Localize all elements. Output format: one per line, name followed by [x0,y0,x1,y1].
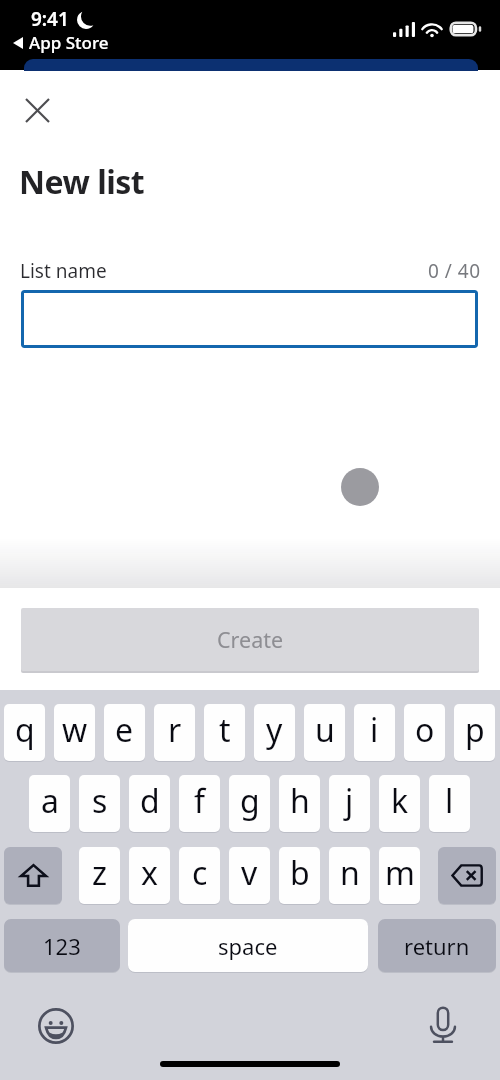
button[interactable]: k [379,775,420,832]
button[interactable]: d [129,775,170,832]
staticText: a [41,779,59,823]
button[interactable]: r [154,704,195,761]
staticText: z [92,851,108,895]
staticText: c [192,851,208,895]
staticText: New list [19,160,145,204]
button[interactable]: List name field [21,290,478,348]
staticText: j [345,779,354,823]
button[interactable]: u [304,704,345,761]
button[interactable]: n [329,847,370,904]
button[interactable]: v [229,847,270,904]
staticText: 0 / 40 [428,258,481,284]
button[interactable]: w [54,704,95,761]
button[interactable]: i [354,704,395,761]
staticText: space [218,931,278,961]
staticText: o [415,708,435,752]
staticText: Create [217,625,284,654]
button[interactable]: y [254,704,295,761]
button[interactable]: q [4,704,45,761]
staticText: g [240,779,260,823]
button[interactable]: c [179,847,220,904]
staticText: List name [20,258,107,284]
staticText: App Store [29,31,109,54]
staticText: m [385,851,415,895]
staticText: f [194,779,206,823]
staticText: q [15,708,35,752]
button[interactable]: return [378,919,496,972]
staticText: l [445,779,454,823]
button[interactable]: Shift [4,847,62,904]
button[interactable]: h [279,775,320,832]
staticText: p [465,708,485,752]
staticText: h [290,779,310,823]
staticText: i [370,708,379,752]
staticText: return [404,931,470,961]
staticText: e [115,708,134,752]
staticText: b [290,851,310,895]
staticText: r [168,708,182,752]
button[interactable]: z [79,847,120,904]
staticText: t [219,708,231,752]
button[interactable]: space [128,919,368,972]
staticText: 123 [43,931,81,961]
button[interactable]: e [104,704,145,761]
staticText: x [141,851,158,895]
button[interactable]: m [379,847,420,904]
button[interactable]: g [229,775,270,832]
button[interactable]: p [454,704,495,761]
button[interactable]: Dictation [421,1003,465,1047]
staticText: y [266,708,283,752]
button[interactable]: j [329,775,370,832]
button[interactable]: Create [21,608,479,671]
button[interactable]: Emoji [34,1004,78,1048]
button[interactable]: o [404,704,445,761]
staticText: d [140,779,160,823]
button[interactable]: b [279,847,320,904]
staticText: w [62,708,88,752]
staticText: v [241,851,258,895]
staticText: u [315,708,335,752]
button[interactable]: Backspace [438,847,496,904]
button[interactable]: a [29,775,70,832]
staticText: n [340,851,360,895]
button[interactable]: x [129,847,170,904]
button[interactable]: f [179,775,220,832]
staticText: k [391,779,409,823]
button[interactable]: l [429,775,470,832]
staticText: 9:41 [31,6,69,32]
button[interactable]: s [79,775,120,832]
staticText: s [92,779,108,823]
button[interactable]: t [204,704,245,761]
button[interactable]: Close [14,86,60,132]
button[interactable]: 123 [4,919,120,972]
